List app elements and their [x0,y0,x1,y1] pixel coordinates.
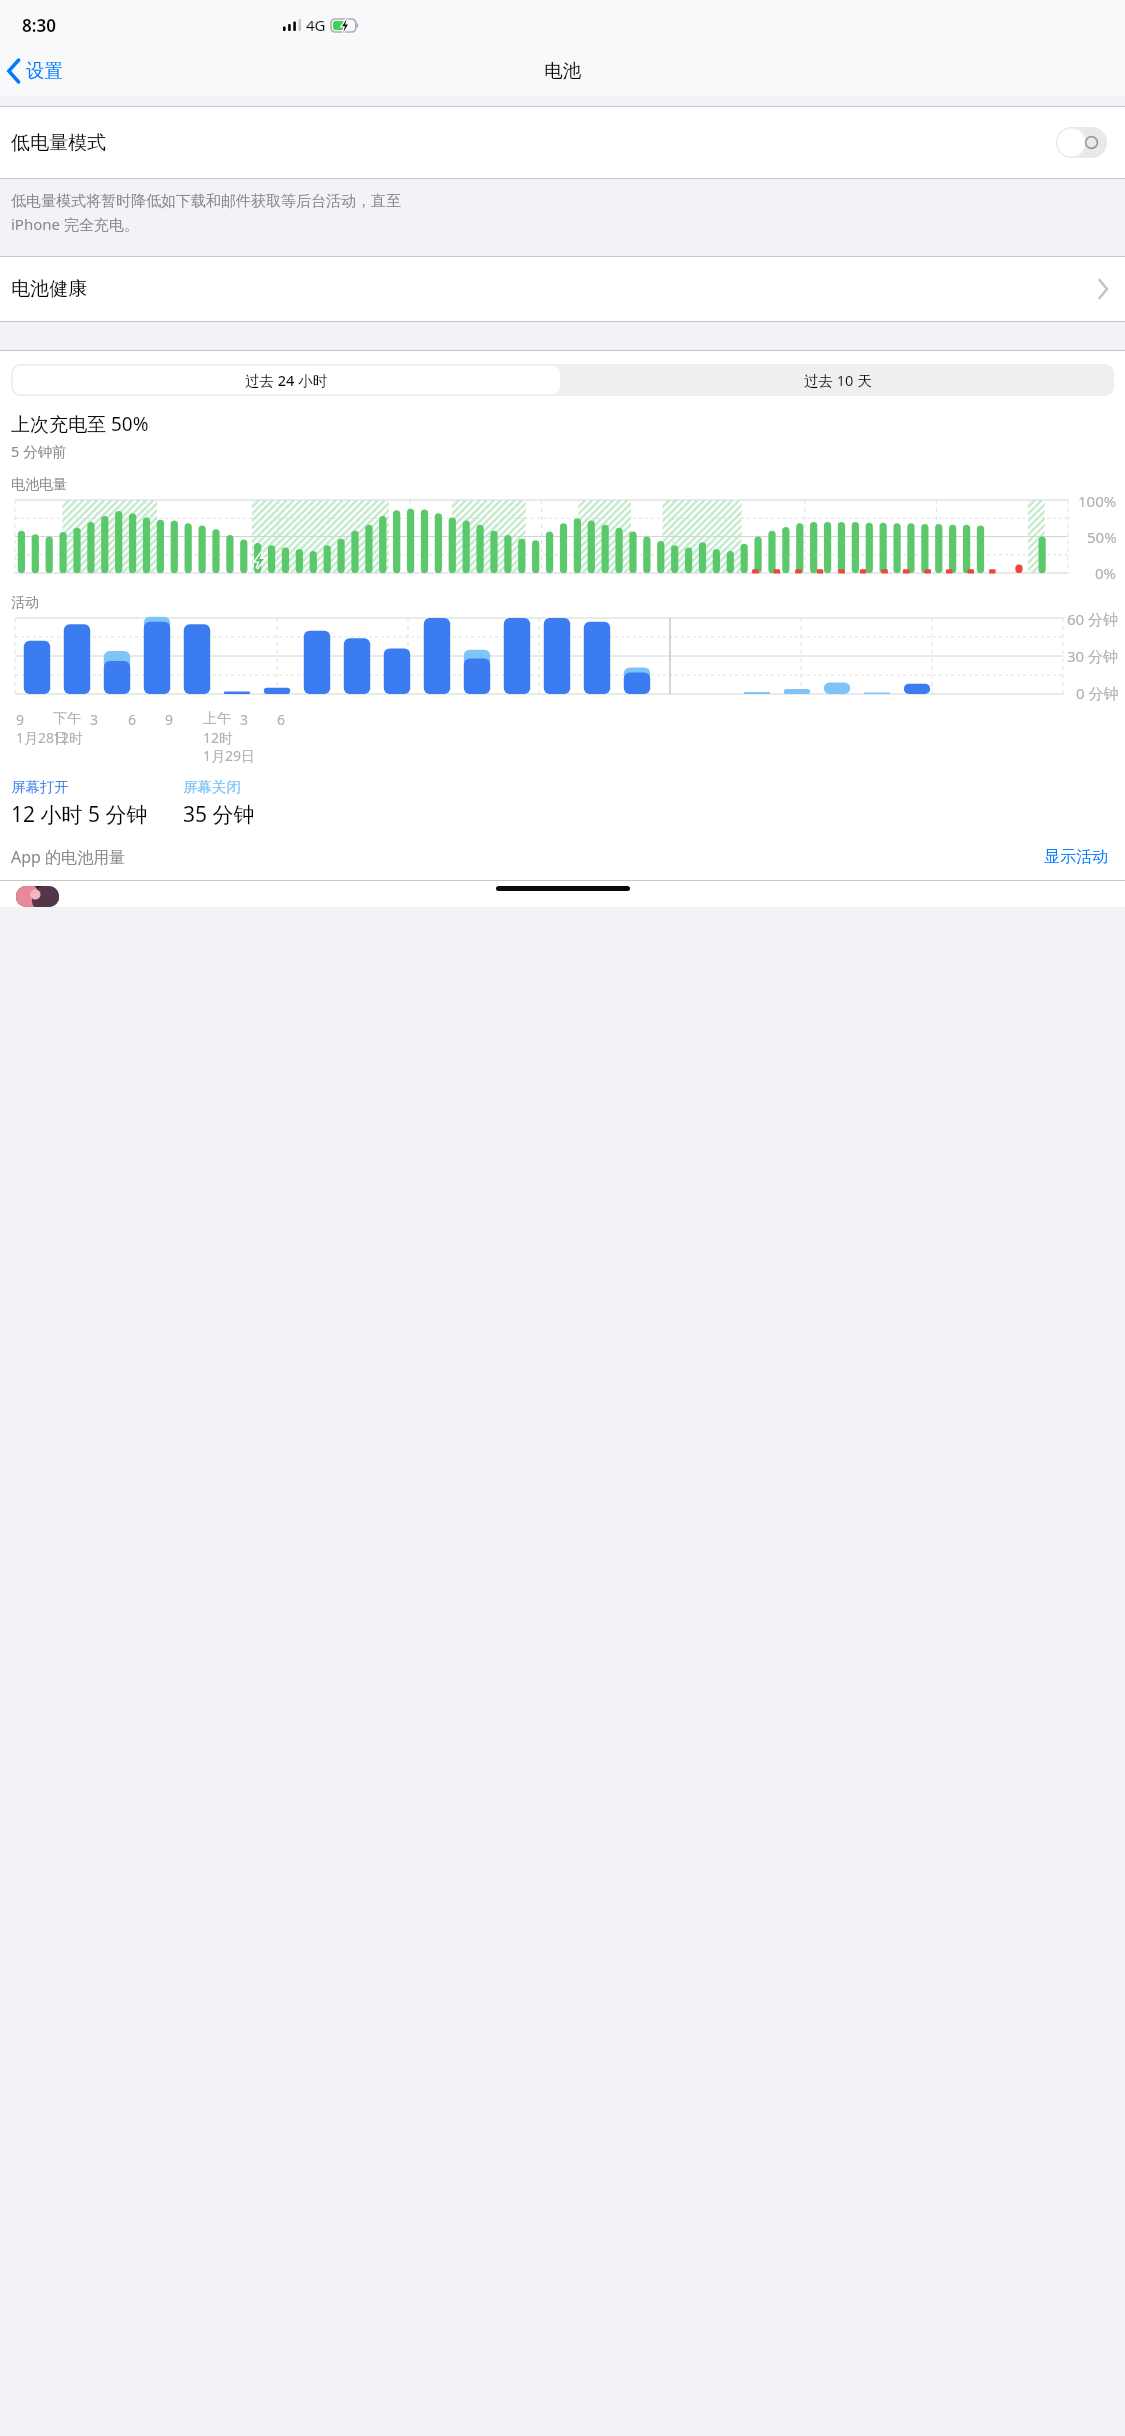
button[interactable]: 低电量模式开关 [1056,127,1107,158]
staticText: 电池电量 [11,476,67,494]
button[interactable]: 过去 24 小时 [13,366,560,394]
staticText: 设置 [26,59,63,82]
staticText: 电池 [544,59,581,82]
button[interactable]: 过去 10 天 [562,364,1114,396]
staticText: 屏幕关闭 [183,778,241,796]
staticText: 低电量模式将暂时降低如下载和邮件获取等后台活动，直至 [11,192,401,211]
staticText: 3 [90,710,99,729]
staticText: 50% [1087,527,1117,547]
staticText: iPhone 完全充电。 [11,214,139,234]
staticText: 显示活动 [1044,847,1108,867]
button[interactable]: 显示活动 [1040,843,1112,871]
staticText: 8:30 [22,14,56,37]
button[interactable]: 低电量模式 [0,107,1125,178]
staticText: 6 [128,710,137,729]
staticText: 6 [277,710,286,729]
button[interactable] [16,886,59,907]
staticText: 1月29日 [203,746,256,765]
staticText: 3 [240,710,249,729]
staticText: 35 分钟 [183,800,255,829]
staticText: 0% [1095,563,1117,583]
staticText: 上次充电至 50% [11,411,149,437]
staticText: 4G [306,15,326,35]
staticText: App 的电池用量 [11,846,126,868]
staticText: 5 分钟前 [11,441,67,461]
staticText: 60 分钟 [1067,609,1119,629]
staticText: 30 分钟 [1067,646,1119,666]
staticText: 活动 [11,594,39,612]
staticText: 12时 [203,728,234,747]
staticText: 电池健康 [11,277,87,301]
button[interactable]: 设置 [0,55,71,86]
staticText: 9 [16,710,25,729]
staticText: 过去 24 小时 [245,370,328,390]
staticText: 100% [1078,491,1117,511]
staticText: 12 小时 5 分钟 [11,800,148,829]
staticText: 过去 10 天 [804,370,872,390]
staticText: 屏幕打开 [11,778,69,796]
staticText: 9 [165,710,174,729]
staticText: 上午 [203,710,231,728]
staticText: 12时 [53,728,84,747]
staticText: 0 分钟 [1076,683,1119,703]
button[interactable]: 电池健康 [0,257,1125,321]
staticText: 下午 [53,710,81,728]
staticText: 低电量模式 [11,131,106,155]
staticText: 1月28日 [16,728,69,747]
